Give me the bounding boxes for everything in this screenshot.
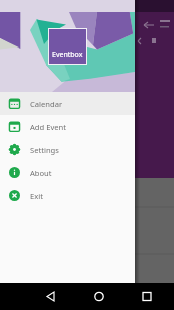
staticText: Calendar: [30, 99, 63, 109]
staticText: Exit: [30, 191, 43, 201]
button[interactable]: Back: [27, 283, 75, 310]
staticText: Add Event: [30, 122, 66, 132]
button[interactable]: Calendar: [0, 92, 135, 115]
staticText: About: [30, 168, 52, 178]
button[interactable]: Exit: [0, 184, 135, 207]
button[interactable]: Home: [75, 283, 123, 310]
button[interactable]: Add Event: [0, 115, 135, 138]
button[interactable]: Settings: [0, 138, 135, 161]
staticText: Eventbox: [52, 50, 83, 60]
staticText: Settings: [30, 145, 59, 155]
button[interactable]: Recent apps: [123, 283, 171, 310]
button[interactable]: About: [0, 161, 135, 184]
